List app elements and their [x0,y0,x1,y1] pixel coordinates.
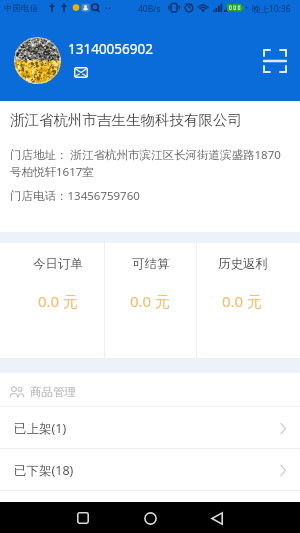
staticText: 今日订单 [33,256,83,272]
button[interactable]: 已下架(18) [0,448,300,490]
staticText: 已下架(18) [14,462,74,479]
staticText: 13140056902 [68,40,153,58]
staticText: 浙江省杭州市吉生生物科技有限公司 [10,111,242,129]
staticText: 中国电信 [4,3,38,14]
staticText: 40B/s [138,3,161,15]
staticText: 可结算 [132,256,170,272]
button[interactable]: Avatar [14,37,61,84]
button[interactable]: Back [202,503,232,533]
staticText: 已上架(1) [14,420,67,437]
button[interactable]: 已上架(1) [0,406,300,448]
button[interactable]: Messages [71,62,91,82]
staticText: 0.0 元 [130,291,171,311]
staticText: 0.0 元 [222,291,263,311]
staticText: 商品管理 [30,385,76,399]
button[interactable]: Home [135,503,165,533]
staticText: 晚上10:36 [252,3,291,15]
staticText: 0.0 元 [38,291,79,311]
button[interactable]: Scan [259,45,291,77]
staticText: 门店地址： 浙江省杭州市滨江区长河街道滨盛路1870号柏悦轩1617室 [10,147,289,179]
staticText: 历史返利 [218,256,268,272]
button[interactable]: Recents [68,503,98,533]
staticText: 门店电话：13456759760 [10,188,140,204]
